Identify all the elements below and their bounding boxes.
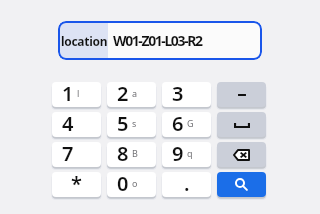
button[interactable]: Minus bbox=[217, 82, 266, 107]
button[interactable]: 9 bbox=[162, 142, 211, 167]
button[interactable]: 0 bbox=[107, 172, 156, 197]
staticText: 2 bbox=[117, 82, 129, 105]
button[interactable]: Search bbox=[217, 172, 266, 197]
staticText: s bbox=[132, 117, 137, 129]
button[interactable]: 2 bbox=[107, 82, 156, 107]
button[interactable]: . bbox=[162, 172, 211, 197]
staticText: 1 bbox=[62, 82, 74, 105]
staticText: a bbox=[132, 87, 138, 99]
staticText: location bbox=[61, 33, 108, 49]
staticText: . bbox=[184, 172, 190, 195]
staticText: B bbox=[132, 147, 138, 159]
staticText: G bbox=[187, 117, 194, 129]
staticText: q bbox=[187, 147, 193, 159]
staticText: l bbox=[77, 87, 80, 99]
button[interactable]: 3 bbox=[162, 82, 211, 107]
staticText: * bbox=[71, 172, 82, 195]
staticText: 8 bbox=[117, 142, 129, 165]
button[interactable]: 5 bbox=[107, 112, 156, 137]
staticText: W01-Z01-L03-R2 bbox=[113, 31, 202, 50]
button[interactable]: location bbox=[60, 23, 260, 58]
staticText: 3 bbox=[172, 82, 184, 105]
button[interactable]: Space bbox=[217, 112, 266, 137]
button[interactable]: 6 bbox=[162, 112, 211, 137]
staticText: 6 bbox=[172, 112, 184, 135]
staticText: 9 bbox=[172, 142, 184, 165]
button[interactable]: * bbox=[52, 172, 101, 197]
button[interactable]: 1 bbox=[52, 82, 101, 107]
button[interactable]: 7 bbox=[52, 142, 101, 167]
button[interactable]: Backspace bbox=[217, 142, 266, 167]
staticText: 4 bbox=[62, 112, 74, 135]
button[interactable]: 4 bbox=[52, 112, 101, 137]
staticText: o bbox=[132, 177, 138, 189]
staticText: 5 bbox=[117, 112, 129, 135]
staticText: 7 bbox=[62, 142, 74, 165]
staticText: 0 bbox=[117, 172, 129, 195]
button[interactable]: 8 bbox=[107, 142, 156, 167]
